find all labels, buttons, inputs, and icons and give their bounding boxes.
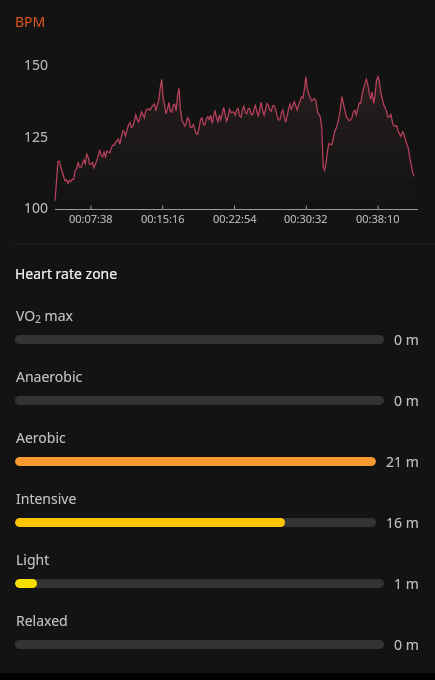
staticText: 00:30:32 [284, 211, 328, 226]
button[interactable]: VO2 max [0, 298, 435, 342]
other: Heart rate chart [0, 0, 435, 680]
staticText: 21 m [386, 452, 419, 471]
staticText: VO2 max [16, 306, 73, 326]
button[interactable]: Light [0, 542, 435, 586]
staticText: Aerobic [16, 428, 66, 447]
staticText: BPM [15, 12, 46, 31]
staticText: Light [16, 550, 50, 569]
staticText: Anaerobic [16, 367, 83, 386]
button[interactable]: Aerobic [0, 420, 435, 464]
staticText: 00:38:10 [356, 211, 400, 226]
staticText: 00:22:54 [213, 211, 257, 226]
button[interactable]: Relaxed [0, 603, 435, 647]
staticText: 150 [24, 55, 49, 74]
staticText: 125 [24, 127, 49, 146]
staticText: 0 m [394, 635, 419, 654]
staticText: Intensive [16, 489, 77, 508]
staticText: 0 m [394, 330, 419, 349]
staticText: 00:07:38 [69, 211, 113, 226]
staticText: Heart rate zone [15, 264, 118, 283]
staticText: Relaxed [16, 611, 68, 630]
staticText: 100 [24, 198, 49, 217]
button[interactable]: Intensive [0, 481, 435, 525]
staticText: 00:15:16 [141, 211, 185, 226]
staticText: 16 m [386, 513, 419, 532]
staticText: 1 m [394, 574, 419, 593]
staticText: 0 m [394, 391, 419, 410]
button[interactable]: Anaerobic [0, 359, 435, 403]
